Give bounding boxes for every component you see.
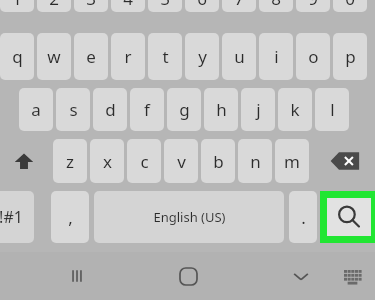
staticText: !#1 — [0, 206, 23, 228]
button[interactable]: . — [289, 191, 317, 243]
button[interactable]: r — [111, 33, 145, 80]
staticText: 4 — [123, 0, 133, 10]
button[interactable]: 2 — [37, 0, 71, 12]
staticText: English (US) — [153, 208, 226, 226]
button[interactable]: 7 — [222, 0, 256, 12]
staticText: 7 — [234, 0, 244, 10]
staticText: t — [162, 45, 169, 68]
staticText: s — [69, 98, 78, 121]
button[interactable]: !#1 — [0, 191, 34, 243]
button[interactable]: w — [37, 33, 71, 80]
button[interactable]: Backspace — [314, 139, 375, 183]
staticText: , — [68, 206, 73, 229]
button[interactable]: a — [19, 88, 53, 131]
button[interactable]: 6 — [185, 0, 219, 12]
staticText: j — [256, 98, 261, 121]
staticText: x — [103, 150, 112, 173]
staticText: f — [144, 98, 150, 121]
staticText: 3 — [86, 0, 96, 10]
staticText: 1 — [12, 0, 22, 10]
button[interactable]: English (US) — [94, 191, 284, 243]
button[interactable]: , — [51, 191, 89, 243]
staticText: l — [330, 98, 335, 121]
button[interactable]: p — [333, 33, 367, 80]
button[interactable]: Shift — [0, 139, 48, 183]
staticText: a — [31, 98, 41, 121]
staticText: 8 — [271, 0, 281, 10]
button[interactable]: k — [278, 88, 312, 131]
staticText: y — [198, 45, 207, 68]
button[interactable]: f — [130, 88, 164, 131]
button[interactable]: j — [241, 88, 275, 131]
button[interactable]: o — [296, 33, 330, 80]
button[interactable]: i — [259, 33, 293, 80]
button[interactable]: Recent apps — [60, 259, 94, 293]
button[interactable]: Change keyboard — [337, 261, 367, 291]
staticText: u — [234, 45, 245, 68]
button[interactable]: 9 — [296, 0, 330, 12]
staticText: d — [105, 98, 116, 121]
staticText: v — [177, 150, 186, 173]
button[interactable]: v — [164, 139, 198, 183]
button[interactable]: Hide keyboard — [284, 259, 318, 293]
staticText: k — [290, 98, 300, 121]
button[interactable]: b — [201, 139, 235, 183]
staticText: . — [301, 206, 306, 229]
button[interactable]: q — [0, 33, 34, 80]
button[interactable]: 1 — [0, 0, 34, 12]
staticText: m — [284, 150, 300, 173]
staticText: 6 — [197, 0, 207, 10]
staticText: c — [140, 150, 149, 173]
button[interactable]: 8 — [259, 0, 293, 12]
button[interactable]: l — [315, 88, 349, 131]
button[interactable]: x — [90, 139, 124, 183]
staticText: 0 — [345, 0, 355, 10]
staticText: e — [86, 45, 96, 68]
button[interactable]: e — [74, 33, 108, 80]
button[interactable]: z — [53, 139, 87, 183]
staticText: 2 — [49, 0, 59, 10]
button[interactable]: h — [204, 88, 238, 131]
button[interactable]: Home — [170, 258, 206, 294]
staticText: q — [12, 45, 23, 68]
button[interactable]: c — [127, 139, 161, 183]
staticText: 9 — [308, 0, 318, 10]
staticText: w — [47, 45, 61, 68]
staticText: n — [250, 150, 261, 173]
button[interactable]: g — [167, 88, 201, 131]
button[interactable]: Search — [322, 191, 375, 243]
staticText: g — [179, 98, 190, 121]
staticText: h — [216, 98, 227, 121]
staticText: i — [274, 45, 279, 68]
staticText: o — [308, 45, 319, 68]
button[interactable]: 3 — [74, 0, 108, 12]
button[interactable]: 5 — [148, 0, 182, 12]
button[interactable]: m — [275, 139, 309, 183]
staticText: z — [66, 150, 74, 173]
staticText: b — [213, 150, 224, 173]
button[interactable]: u — [222, 33, 256, 80]
staticText: r — [124, 45, 132, 68]
staticText: p — [345, 45, 356, 68]
staticText: 5 — [160, 0, 170, 10]
button[interactable]: s — [56, 88, 90, 131]
button[interactable]: 0 — [333, 0, 367, 12]
button[interactable]: 4 — [111, 0, 145, 12]
button[interactable]: t — [148, 33, 182, 80]
button[interactable]: n — [238, 139, 272, 183]
button[interactable]: y — [185, 33, 219, 80]
button[interactable]: d — [93, 88, 127, 131]
